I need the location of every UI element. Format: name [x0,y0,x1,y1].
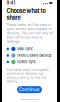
staticText: Mail Sync [17,47,33,51]
button[interactable]: Mail Sync [6,46,52,52]
button[interactable]: Continue [17,86,42,93]
staticText: Your data stays encrypted end-to-end. Re… [6,68,48,83]
staticText: Notes Sync [17,60,36,64]
staticText: Choose what to share [6,8,45,21]
button[interactable]: Notes Sync [6,59,52,65]
staticText: 9:41 [6,0,15,6]
staticText: Photo Library Backup [17,53,51,58]
staticText: These items will be kept in sync across … [6,23,52,44]
button[interactable]: Photo Library Backup [6,52,52,59]
staticText: Continue [19,87,40,92]
staticText: ▪▪▪ [42,1,48,5]
